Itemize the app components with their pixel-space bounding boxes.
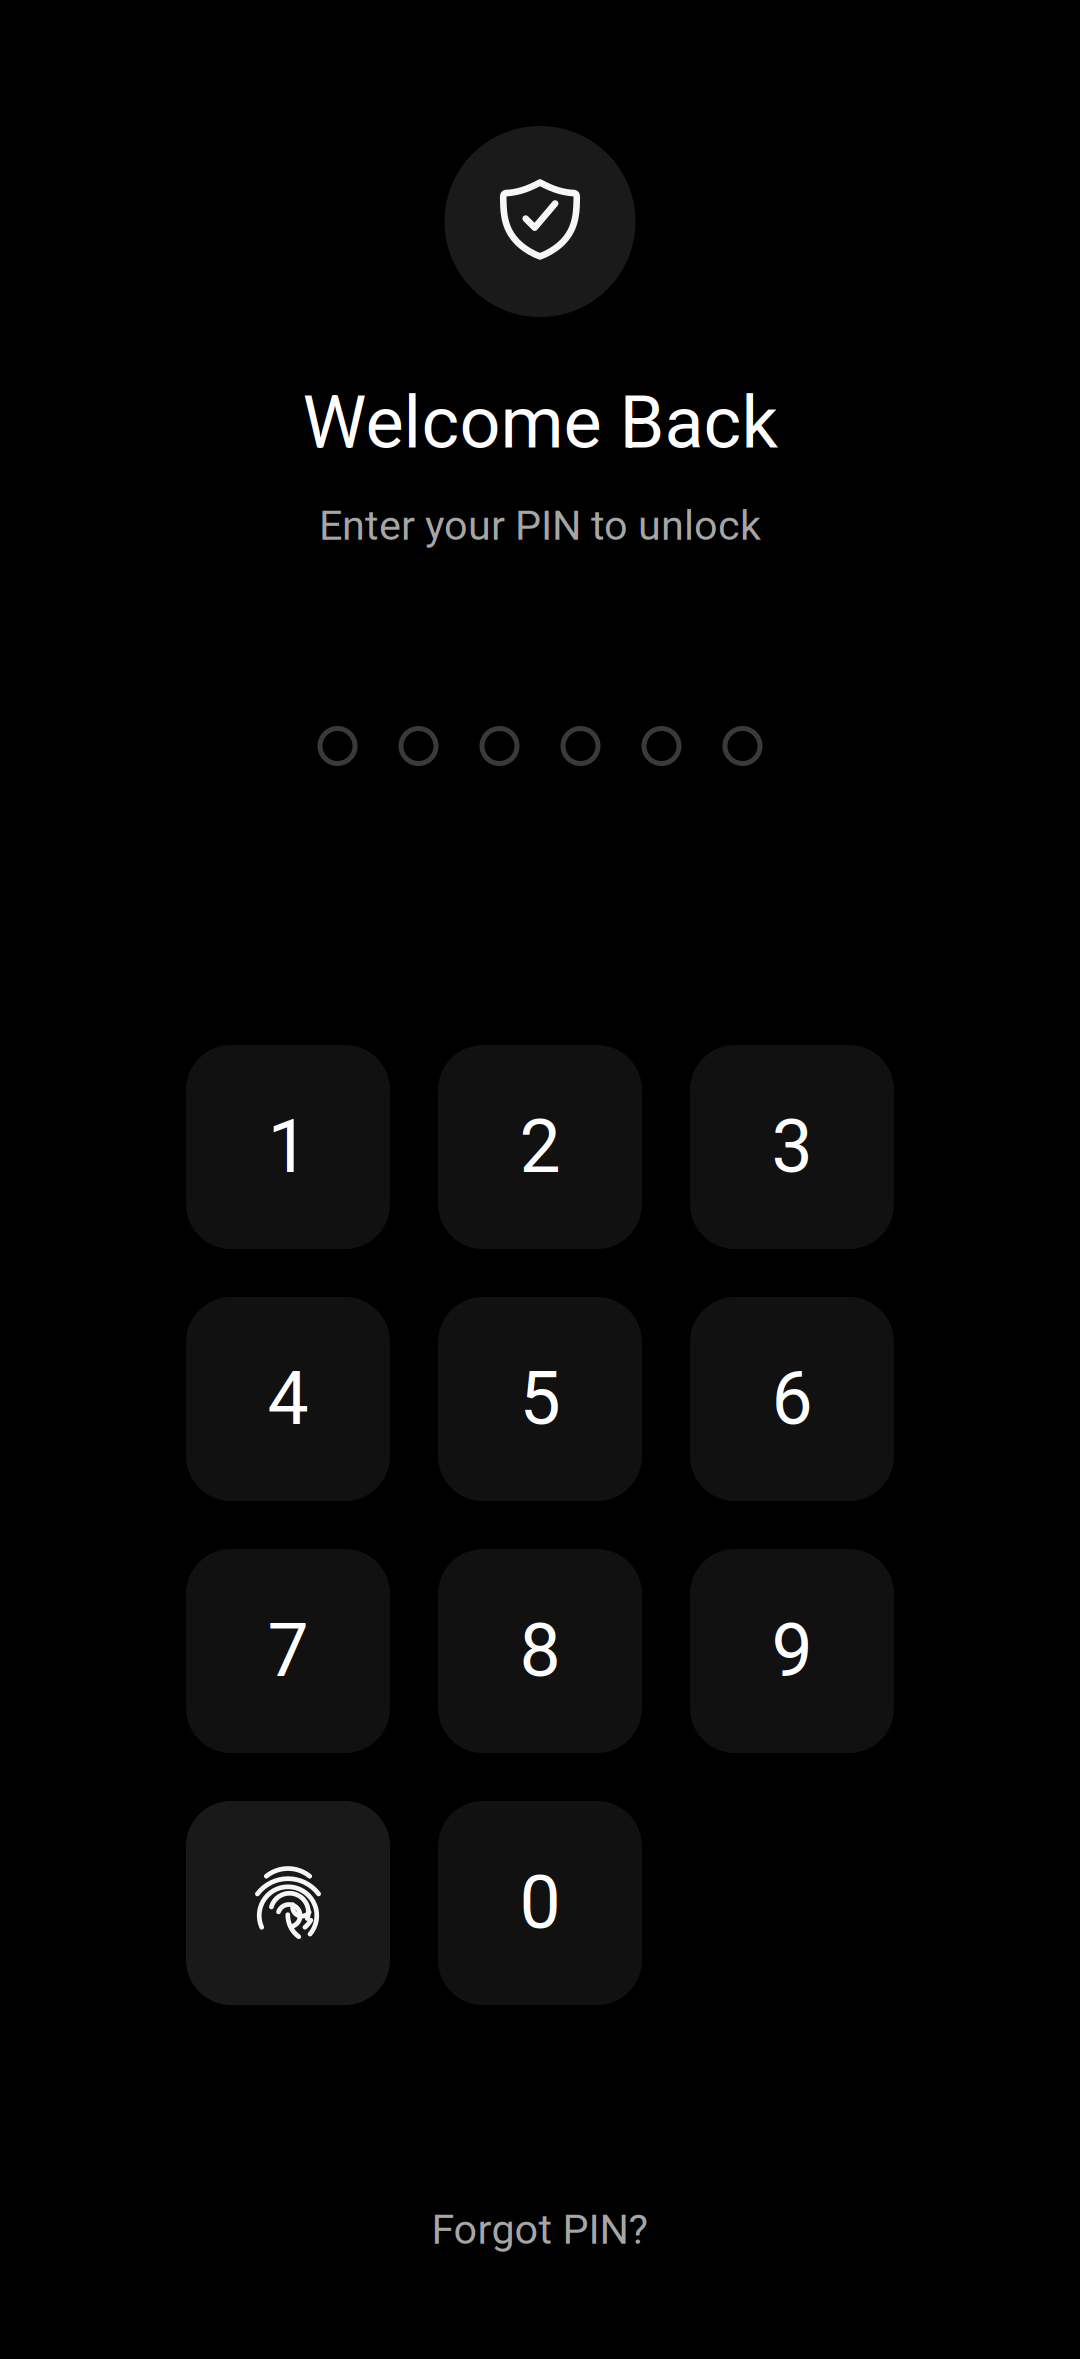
button[interactable]: 9 — [690, 1549, 894, 1753]
staticText: 6 — [771, 1356, 812, 1442]
staticText: 1 — [267, 1104, 308, 1190]
button[interactable]: 2 — [438, 1045, 642, 1249]
button[interactable]: 6 — [690, 1297, 894, 1501]
button[interactable]: 3 — [690, 1045, 894, 1249]
staticText: 2 — [519, 1104, 560, 1190]
button[interactable]: 1 — [186, 1045, 390, 1249]
button[interactable]: Forgot PIN? — [431, 2214, 648, 2245]
button[interactable]: 7 — [186, 1549, 390, 1753]
button[interactable]: 5 — [438, 1297, 642, 1501]
staticText: 0 — [519, 1860, 560, 1946]
button[interactable]: 0 — [438, 1801, 642, 2005]
staticText: Enter your PIN to unlock — [319, 501, 761, 550]
staticText: 9 — [771, 1608, 812, 1694]
button[interactable]: Unlock with fingerprint — [186, 1801, 390, 2005]
staticText: 8 — [519, 1608, 560, 1694]
staticText: Welcome Back — [302, 381, 777, 465]
staticText: 7 — [267, 1608, 308, 1694]
button[interactable]: 8 — [438, 1549, 642, 1753]
staticText: 5 — [519, 1356, 560, 1442]
button[interactable]: 4 — [186, 1297, 390, 1501]
staticText: Forgot PIN? — [431, 2205, 648, 2254]
staticText: 3 — [771, 1104, 812, 1190]
staticText: 4 — [267, 1356, 308, 1442]
